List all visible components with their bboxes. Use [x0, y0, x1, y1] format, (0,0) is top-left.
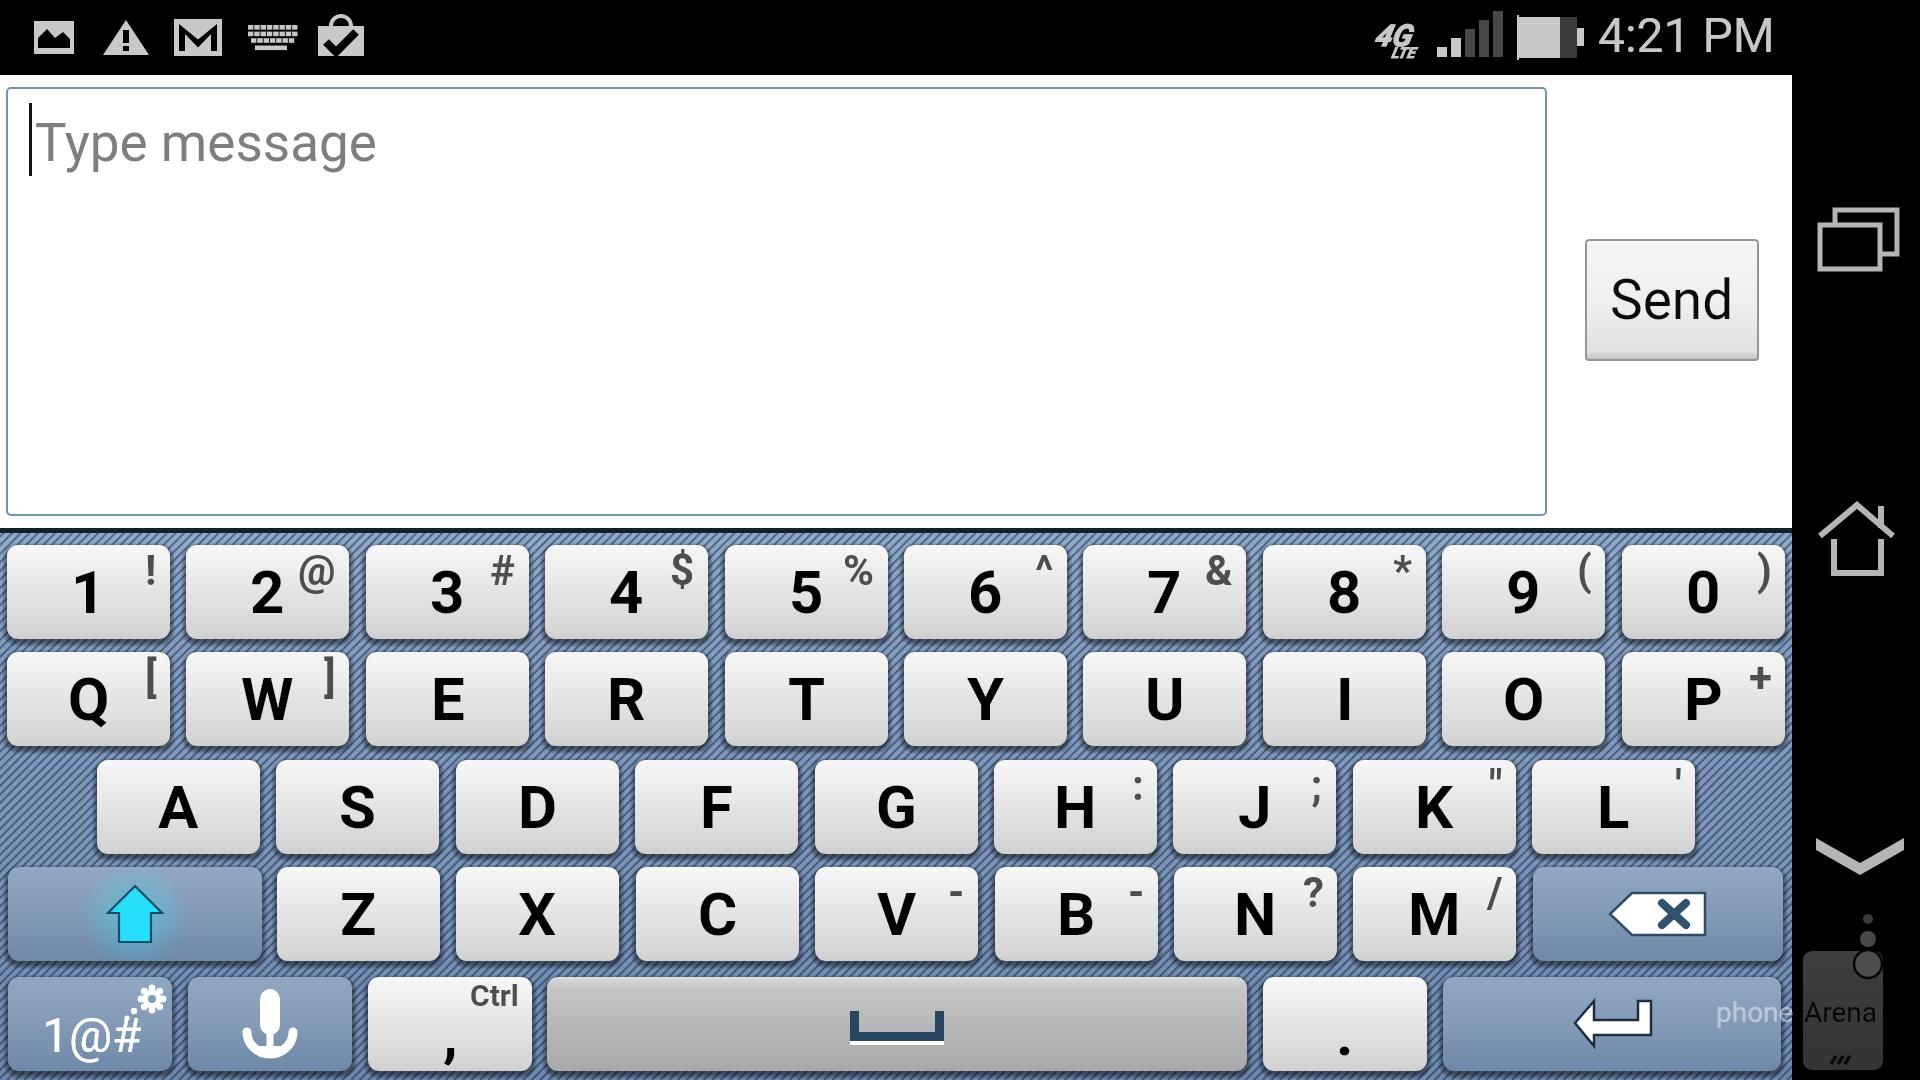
staticText: ': [1675, 761, 1682, 810]
button[interactable]: 7: [1083, 545, 1246, 639]
staticText: .: [1336, 999, 1354, 1069]
staticText: Type message: [35, 112, 377, 174]
button[interactable]: G: [815, 760, 978, 854]
staticText: 4G: [1374, 18, 1411, 53]
staticText: ,: [443, 999, 458, 1069]
button[interactable]: P: [1622, 652, 1785, 746]
button[interactable]: Enter: [1443, 977, 1781, 1071]
staticText: $: [670, 546, 695, 595]
button[interactable]: Y: [904, 652, 1067, 746]
button[interactable]: N: [1174, 867, 1337, 961]
staticText: 9: [1506, 557, 1541, 627]
button[interactable]: J: [1173, 760, 1336, 854]
staticText: (: [1577, 546, 1592, 595]
button[interactable]: 1@#: [8, 977, 172, 1071]
staticText: O: [1503, 664, 1545, 734]
button[interactable]: H: [994, 760, 1157, 854]
staticText: [: [145, 653, 157, 702]
staticText: C: [698, 879, 738, 949]
staticText: :: [1132, 761, 1144, 810]
staticText: ?: [1303, 868, 1324, 917]
button[interactable]: 4: [545, 545, 708, 639]
staticText: LTE: [1391, 44, 1415, 62]
staticText: L: [1597, 772, 1630, 842]
button[interactable]: ,: [368, 977, 532, 1071]
staticText: 1: [71, 557, 106, 627]
button[interactable]: 0: [1622, 545, 1785, 639]
button[interactable]: S: [276, 760, 439, 854]
button[interactable]: Shift: [8, 867, 262, 961]
button[interactable]: T: [725, 652, 888, 746]
staticText: K: [1415, 772, 1454, 842]
staticText: Ctrl: [470, 978, 519, 1013]
staticText: J: [1238, 772, 1272, 842]
staticText: ": [1489, 761, 1503, 810]
button[interactable]: 1: [7, 545, 170, 639]
staticText: G: [876, 772, 917, 842]
button[interactable]: X: [456, 867, 619, 961]
staticText: D: [518, 772, 558, 842]
staticText: Arena: [1804, 996, 1878, 1029]
button[interactable]: Recent apps: [1812, 205, 1904, 277]
button[interactable]: L: [1532, 760, 1695, 854]
button[interactable]: M: [1353, 867, 1516, 961]
button[interactable]: .: [1263, 977, 1427, 1071]
staticText: A: [158, 772, 199, 842]
button[interactable]: 2: [186, 545, 349, 639]
staticText: Send: [1610, 268, 1734, 332]
staticText: F: [700, 772, 733, 842]
button[interactable]: 9: [1442, 545, 1605, 639]
button[interactable]: V: [815, 867, 978, 961]
staticText: 0: [1686, 557, 1721, 627]
button[interactable]: U: [1083, 652, 1246, 746]
button[interactable]: D: [456, 760, 619, 854]
staticText: U: [1145, 664, 1185, 734]
staticText: Z: [340, 879, 377, 949]
button[interactable]: Type message: [6, 87, 1547, 516]
staticText: -: [1128, 868, 1145, 917]
button[interactable]: E: [366, 652, 529, 746]
staticText: ): [1757, 546, 1772, 595]
staticText: R: [607, 664, 646, 734]
staticText: 8: [1327, 557, 1362, 627]
staticText: ;: [1311, 761, 1323, 810]
staticText: H: [1054, 772, 1097, 842]
button[interactable]: O: [1442, 652, 1605, 746]
button[interactable]: 8: [1263, 545, 1426, 639]
staticText: &: [1205, 546, 1233, 595]
button[interactable]: Z: [277, 867, 440, 961]
staticText: 1@#: [42, 1007, 142, 1063]
button[interactable]: Backspace: [1533, 867, 1783, 961]
button[interactable]: K: [1353, 760, 1516, 854]
button[interactable]: Send: [1585, 239, 1759, 361]
staticText: +: [1749, 653, 1772, 702]
staticText: !: [145, 546, 157, 595]
button[interactable]: Home: [1812, 498, 1902, 588]
staticText: phone: [1716, 996, 1794, 1029]
button[interactable]: B: [995, 867, 1158, 961]
button[interactable]: W: [186, 652, 349, 746]
button[interactable]: 3: [366, 545, 529, 639]
staticText: 6: [968, 557, 1003, 627]
staticText: 7: [1147, 557, 1182, 627]
staticText: E: [431, 664, 465, 734]
staticText: 3: [430, 557, 465, 627]
button[interactable]: I: [1263, 652, 1426, 746]
staticText: 2: [250, 557, 285, 627]
staticText: -: [948, 868, 965, 917]
staticText: ]: [324, 653, 336, 702]
staticText: X: [518, 879, 557, 949]
button[interactable]: 5: [725, 545, 888, 639]
staticText: Q: [68, 664, 110, 734]
button[interactable]: R: [545, 652, 708, 746]
button[interactable]: Q: [7, 652, 170, 746]
button[interactable]: A: [97, 760, 260, 854]
button[interactable]: 6: [904, 545, 1067, 639]
button[interactable]: Space: [547, 977, 1247, 1071]
button[interactable]: Back: [1810, 825, 1910, 880]
button[interactable]: C: [636, 867, 799, 961]
staticText: 4: [609, 557, 644, 627]
staticText: 5: [789, 557, 824, 627]
button[interactable]: Voice input: [188, 977, 352, 1071]
button[interactable]: F: [635, 760, 798, 854]
